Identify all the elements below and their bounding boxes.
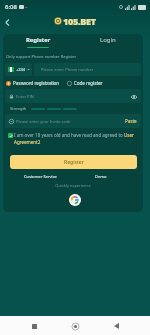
staticText: Please enter your Invite code	[16, 119, 71, 124]
staticText: Only support Phone number Register	[6, 54, 77, 59]
staticText: 6:08	[5, 3, 17, 11]
button[interactable]: Please enter your Invite code	[5, 114, 141, 128]
button[interactable]: Register	[3, 34, 73, 49]
button[interactable]: Please enter Phone number	[34, 63, 141, 76]
button[interactable]: Customer Service	[24, 172, 57, 180]
button[interactable]: I am over 18 years old and have read and…	[8, 132, 143, 145]
staticText: Strength	[10, 106, 27, 111]
button[interactable]: Register	[10, 155, 137, 169]
staticText: Paste	[125, 118, 137, 124]
staticText: I am over 18 years old and have read and…	[14, 132, 124, 138]
button[interactable]: Enter PIN	[5, 89, 141, 103]
button[interactable]: Home	[68, 319, 82, 333]
button[interactable]: +234	[5, 63, 32, 76]
staticText: +234	[16, 67, 26, 72]
staticText: Customer Service	[24, 174, 57, 179]
button[interactable]: Code register	[67, 80, 103, 86]
button[interactable]: Back	[1, 16, 13, 28]
staticText: ··	[25, 4, 28, 11]
staticText: Password registration	[13, 80, 60, 86]
staticText: User	[124, 132, 134, 138]
button[interactable]: Sign in with Google	[69, 194, 81, 206]
staticText: Agreement2	[14, 139, 41, 145]
button[interactable]: Recents	[27, 319, 41, 333]
staticText: 105.BET	[63, 15, 96, 27]
staticText: Please enter Phone number	[41, 67, 94, 72]
staticText: Enter PIN	[16, 94, 34, 99]
button[interactable]: Demo	[95, 172, 107, 180]
staticText: Login	[100, 36, 116, 44]
staticText: Register	[26, 36, 51, 44]
button[interactable]: Login	[73, 34, 143, 49]
staticText: Code register	[74, 80, 103, 86]
button[interactable]: Password registration	[6, 80, 60, 86]
staticText: Register	[64, 159, 84, 166]
staticText: Quickly experience	[3, 183, 143, 188]
button[interactable]: Back	[109, 319, 123, 333]
staticText: Demo	[95, 174, 107, 179]
